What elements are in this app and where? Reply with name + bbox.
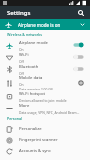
staticText: Personalize <box>19 126 42 132</box>
button[interactable]: Wi-Fi <box>0 51 90 63</box>
staticText: Personal <box>7 116 22 121</box>
button[interactable]: Search <box>75 7 86 18</box>
staticText: More <box>19 103 30 109</box>
button[interactable]: Bluetooth <box>0 63 90 75</box>
staticText: Wireless & networks <box>7 32 42 37</box>
staticText: Data usage, VPN, NFC, Android Beam… <box>19 110 80 114</box>
staticText: Accounts & sync <box>19 148 51 154</box>
button[interactable] <box>72 65 85 73</box>
button[interactable]: Airplane mode is on <box>0 19 90 30</box>
staticText: Mobile data <box>19 75 43 81</box>
button[interactable]: Airplane mode <box>0 39 90 51</box>
staticText: Devices allowed to join: mobile <box>19 98 67 102</box>
staticText: Airplane mode is on <box>18 22 80 28</box>
button[interactable]: Wi-Fi hotspot <box>0 90 90 102</box>
button[interactable] <box>72 53 85 61</box>
button[interactable]: Mobile data settings <box>76 78 85 87</box>
button[interactable] <box>72 41 85 49</box>
staticText: On <box>19 82 24 86</box>
staticText: Data warning 2.00 GB <box>19 87 53 90</box>
button[interactable]: Mobile data <box>0 75 90 90</box>
staticText: On <box>19 47 24 51</box>
staticText: Bluetooth <box>19 64 39 70</box>
button[interactable]: Personalize <box>0 123 90 134</box>
staticText: Off <box>19 59 24 63</box>
staticText: Airplane mode <box>19 40 48 46</box>
staticText: Fingerprint scanner <box>19 137 58 143</box>
staticText: Wi-Fi <box>19 52 29 58</box>
button[interactable]: Accounts & sync <box>0 145 90 156</box>
staticText: Settings <box>7 9 31 17</box>
staticText: Off <box>19 71 24 75</box>
button[interactable]: More <box>0 102 90 114</box>
other: Expand <box>80 22 85 27</box>
button[interactable]: Fingerprint scanner <box>0 134 90 145</box>
staticText: Wi-Fi hotspot <box>19 91 45 97</box>
